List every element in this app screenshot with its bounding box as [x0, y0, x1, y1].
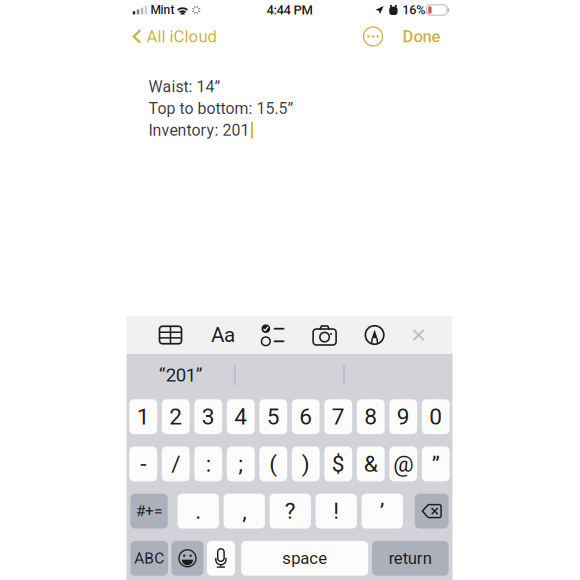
button[interactable]: ! — [316, 494, 357, 528]
button[interactable]: 7 — [324, 399, 352, 434]
staticText: ? — [285, 498, 296, 524]
button[interactable]: $ — [324, 446, 352, 481]
staticText: 8 — [364, 403, 377, 430]
staticText: return — [389, 548, 432, 568]
staticText: 4:44 PM — [266, 2, 312, 18]
staticText: Top to bottom: 15.5” — [148, 99, 293, 118]
button[interactable]: Emoji — [171, 541, 203, 576]
button[interactable]: 0 — [422, 399, 450, 434]
staticText: ; — [238, 451, 243, 477]
staticText: ABC — [134, 549, 164, 567]
staticText: . — [195, 498, 201, 524]
staticText: Waist: 14” — [148, 78, 220, 96]
staticText: / — [171, 451, 180, 477]
button[interactable]: , — [224, 494, 265, 528]
staticText: $ — [332, 451, 345, 477]
button[interactable]: 4 — [227, 399, 255, 434]
button[interactable]: 8 — [357, 399, 385, 434]
button[interactable]: ( — [259, 446, 287, 481]
button[interactable]: - — [129, 446, 157, 481]
staticText: 5 — [267, 403, 280, 430]
staticText: “201” — [159, 364, 203, 386]
button[interactable]: ” — [422, 446, 450, 481]
staticText: , — [242, 498, 246, 524]
staticText: 16% — [402, 3, 425, 17]
button[interactable]: ABC — [130, 541, 168, 576]
button[interactable]: Markup — [360, 316, 390, 354]
staticText: ( — [269, 451, 277, 477]
button[interactable]: Checklist — [258, 316, 288, 354]
button[interactable]: 3 — [194, 399, 222, 434]
button[interactable]: ’ — [362, 494, 403, 528]
button[interactable]: Close keyboard — [404, 316, 434, 354]
staticText: ” — [432, 451, 440, 477]
staticText: - — [140, 451, 146, 477]
button[interactable]: return — [372, 541, 448, 576]
button[interactable]: #+= — [130, 494, 168, 528]
staticText: 0 — [429, 403, 442, 430]
staticText: 1 — [137, 403, 150, 430]
button[interactable]: space — [241, 541, 368, 576]
button[interactable]: More — [353, 22, 384, 51]
staticText: Aa — [211, 323, 235, 347]
button[interactable]: Dictation — [207, 541, 235, 576]
button[interactable]: 5 — [259, 399, 287, 434]
staticText: Mint — [150, 3, 174, 17]
staticText: #+= — [136, 502, 162, 520]
button[interactable]: Delete — [415, 494, 449, 528]
staticText: 9 — [397, 403, 410, 430]
staticText: Done — [402, 27, 440, 46]
button[interactable]: ; — [227, 446, 255, 481]
staticText: ) — [302, 451, 310, 477]
button[interactable]: & — [357, 446, 385, 481]
button[interactable]: Table — [155, 316, 185, 354]
staticText: 3 — [202, 403, 215, 430]
staticText: 2 — [169, 403, 182, 430]
button[interactable]: 1 — [129, 399, 157, 434]
staticText: : — [206, 451, 211, 477]
staticText: Inventory: 201 — [148, 121, 249, 140]
button[interactable]: “201” — [126, 354, 235, 396]
button[interactable]: ? — [270, 494, 311, 528]
staticText: & — [364, 451, 378, 477]
button[interactable]: All iCloud — [126, 22, 224, 51]
button[interactable]: ) — [292, 446, 320, 481]
staticText: 6 — [299, 403, 312, 430]
staticText: All iCloud — [146, 27, 216, 46]
staticText: 4 — [234, 403, 247, 430]
button[interactable]: / — [162, 446, 190, 481]
button[interactable]: : — [194, 446, 222, 481]
button[interactable]: 2 — [162, 399, 190, 434]
staticText: ’ — [380, 498, 385, 524]
button[interactable]: Aa — [208, 316, 238, 354]
button[interactable]: . — [178, 494, 219, 528]
staticText: space — [282, 548, 327, 568]
staticText: ! — [333, 498, 339, 524]
staticText: 7 — [332, 403, 345, 430]
button[interactable]: Camera — [310, 316, 340, 354]
button[interactable]: 6 — [292, 399, 320, 434]
button[interactable]: @ — [389, 446, 417, 481]
staticText: @ — [393, 451, 413, 477]
button[interactable]: 9 — [389, 399, 417, 434]
button[interactable]: Done — [384, 22, 452, 51]
